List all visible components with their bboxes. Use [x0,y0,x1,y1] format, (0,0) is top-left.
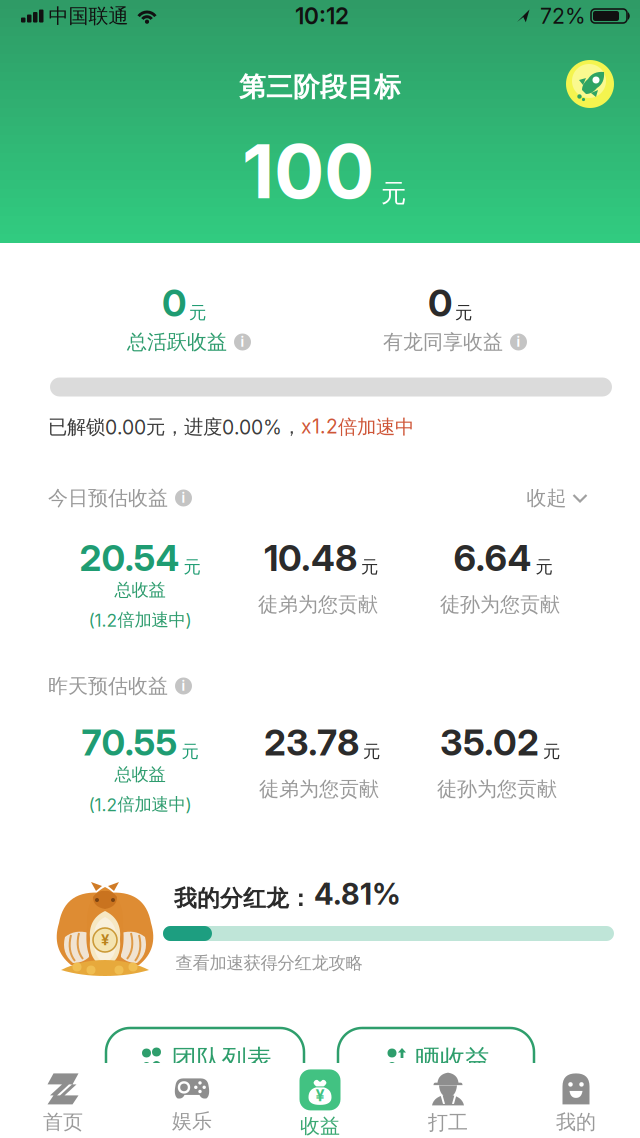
staticText: 我的分红龙： [174,884,312,913]
button[interactable]: 团队列表 [106,1028,304,1118]
staticText: 10:12 [295,2,349,30]
staticText: 20.54 [79,536,179,580]
staticText: 元 [455,302,472,324]
button[interactable]: 说明 [175,677,192,694]
staticText: 元 [535,556,552,578]
staticText: 0 [428,280,452,326]
button[interactable]: 娱乐 [172,1078,212,1134]
button[interactable]: 打工 [428,1073,468,1135]
staticText: 昨天预估收益 [48,673,168,699]
staticText: 元 [543,740,560,762]
staticText: 100 [242,126,374,216]
staticText: 中国联通 [48,3,128,29]
button[interactable]: 有龙同享收益 [383,329,527,355]
staticText: i [181,678,185,694]
staticText: x1.2倍加速中 [301,415,414,439]
staticText: 收益 [300,1113,340,1138]
staticText: i [181,490,185,506]
staticText: 0 [162,280,186,326]
staticText: 第三阶段目标 [239,70,401,104]
staticText: (1.2倍加速中) [88,609,191,631]
button[interactable]: 晒收益 [338,1028,534,1118]
staticText: 收起 [526,485,566,511]
button[interactable]: 首页 [43,1073,83,1135]
staticText: 4.81% [314,876,401,912]
staticText: 70.55 [81,721,177,764]
staticText: 6.64 [453,536,531,580]
staticText: 23.78 [264,721,359,764]
staticText: 团队列表 [171,1043,271,1075]
staticText: 晒收益 [415,1043,490,1075]
staticText: ¥ [315,1086,324,1105]
staticText: 总活跃收益 [127,329,227,355]
staticText: 我的 [556,1109,596,1135]
staticText: 元 [363,740,380,762]
staticText: 10.48 [264,536,357,580]
staticText: 总收益 [114,579,165,601]
button[interactable]: 查看加速获得分红龙攻略 [175,952,362,974]
staticText: i [240,334,244,350]
staticText: 徒弟为您贡献 [259,776,379,802]
staticText: ¥ [101,931,109,949]
button[interactable]: ¥ [299,1069,340,1138]
staticText: i [516,334,520,350]
staticText: 娱乐 [172,1108,212,1134]
staticText: 元 [189,302,206,324]
staticText: 元 [181,740,198,762]
staticText: (1.2倍加速中) [88,794,191,815]
staticText: 元 [381,177,406,209]
staticText: 徒孙为您贡献 [440,592,560,617]
button[interactable]: 我的 [556,1073,596,1135]
staticText: 有龙同享收益 [383,329,503,355]
staticText: 打工 [428,1110,468,1135]
staticText: 总收益 [114,764,165,785]
staticText: 徒孙为您贡献 [437,776,557,802]
button[interactable]: 收起 [526,485,587,511]
staticText: 已解锁0.00元，进度0.00%， [48,415,301,439]
staticText: 72% [540,3,586,29]
staticText: 查看加速获得分红龙攻略 [175,952,362,974]
staticText: 今日预估收益 [48,485,168,511]
staticText: 元 [361,556,378,578]
staticText: 徒弟为您贡献 [258,592,378,617]
staticText: 首页 [43,1109,83,1135]
staticText: 元 [183,556,200,578]
button[interactable]: 加速火箭 [566,60,614,108]
button[interactable]: 说明 [175,489,192,506]
staticText: 35.02 [440,721,539,764]
button[interactable]: 总活跃收益 [127,329,251,355]
